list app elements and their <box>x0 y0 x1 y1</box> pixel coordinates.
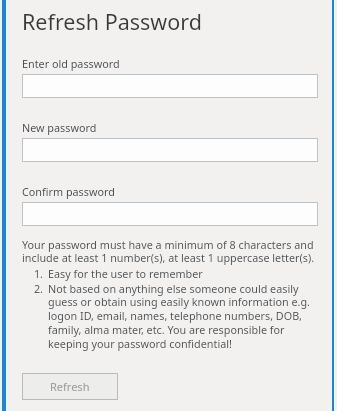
staticText: 1. <box>28 266 43 281</box>
staticText: Confirm password <box>22 184 115 199</box>
staticText: Not based on anything else someone could… <box>48 281 318 351</box>
button[interactable]: New password <box>22 138 318 162</box>
staticText: Your password must have a minimum of 8 c… <box>22 237 318 265</box>
staticText: 2. <box>28 281 43 296</box>
button[interactable]: Enter old password <box>22 74 318 98</box>
staticText: New password <box>22 120 97 135</box>
staticText: Easy for the user to remember <box>48 266 318 281</box>
button[interactable]: Confirm password <box>22 202 318 226</box>
button[interactable]: Refresh <box>22 373 118 400</box>
staticText: Refresh <box>50 379 90 394</box>
staticText: Enter old password <box>22 56 120 71</box>
staticText: Refresh Password <box>22 7 202 36</box>
